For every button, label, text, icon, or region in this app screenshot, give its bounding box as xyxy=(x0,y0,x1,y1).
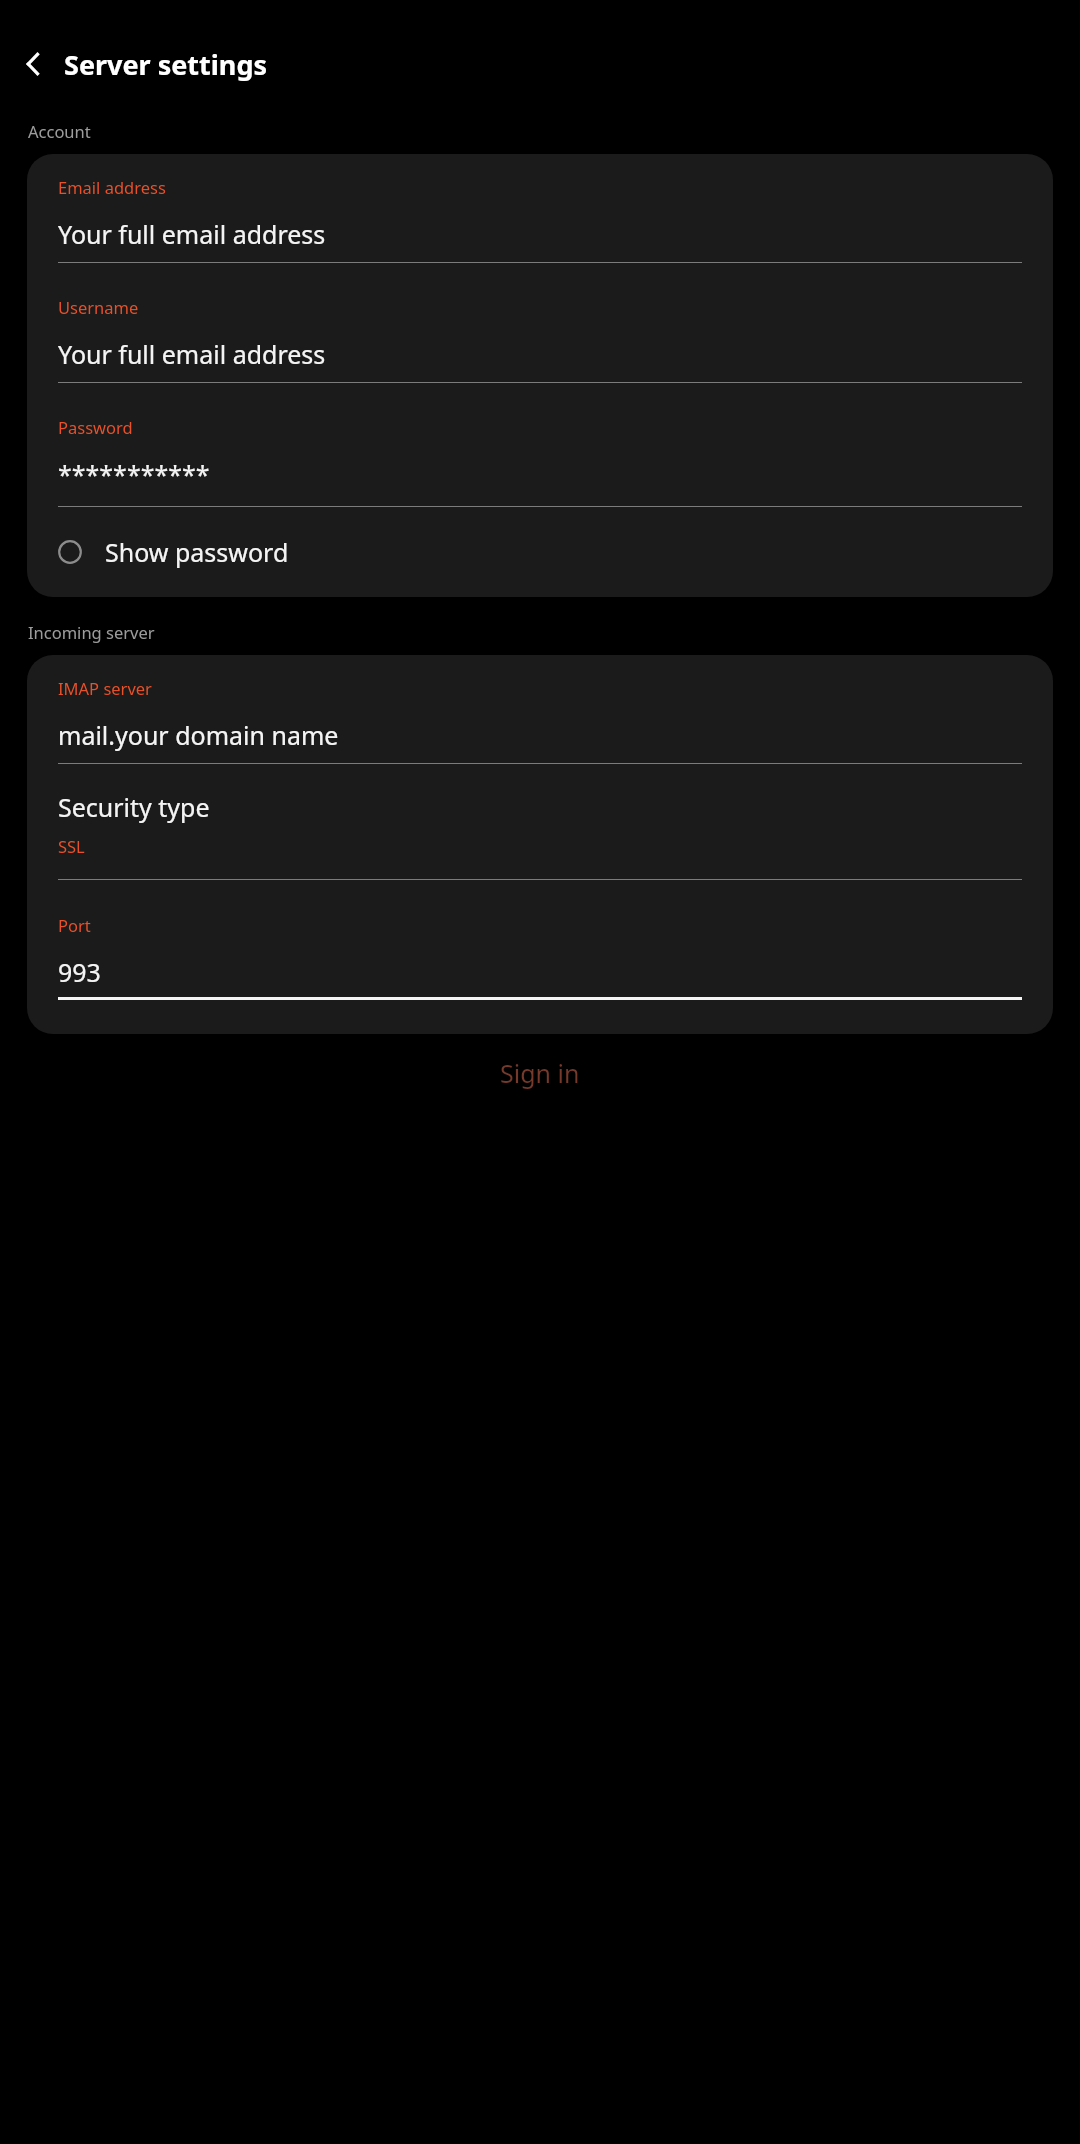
staticText: Your full email address xyxy=(58,337,326,371)
staticText: mail.your domain name xyxy=(58,718,339,752)
button[interactable]: Back xyxy=(14,44,54,84)
staticText: 993 xyxy=(58,955,101,989)
button[interactable]: Show password xyxy=(58,535,1022,569)
staticText: Email address xyxy=(58,176,166,198)
staticText: Your full email address xyxy=(58,217,326,251)
staticText: Sign in xyxy=(500,1056,580,1090)
staticText: Show password xyxy=(105,535,289,569)
staticText: Password xyxy=(58,416,133,438)
staticText: Incoming server xyxy=(28,621,155,643)
staticText: *********** xyxy=(58,457,210,491)
staticText: Port xyxy=(58,914,91,936)
staticText: Security type xyxy=(58,790,210,824)
staticText: Server settings xyxy=(64,46,268,83)
staticText: IMAP server xyxy=(58,677,152,699)
staticText: Account xyxy=(28,120,91,142)
staticText: SSL xyxy=(58,835,85,857)
staticText: Username xyxy=(58,296,139,318)
button[interactable]: Sign in xyxy=(0,1034,1080,1112)
button[interactable]: Security type xyxy=(58,790,1022,880)
